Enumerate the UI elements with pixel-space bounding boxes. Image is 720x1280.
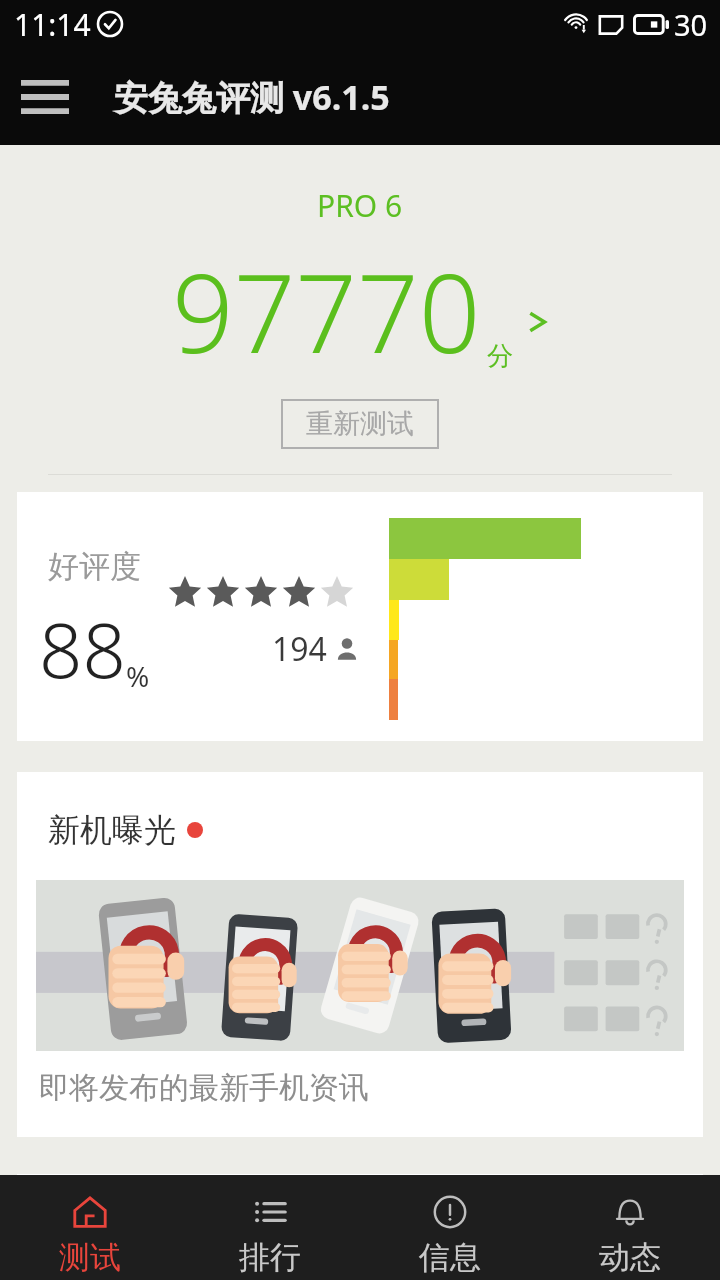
staticText: 测试 [59, 1238, 121, 1277]
staticText: 194 [272, 627, 327, 671]
staticText: 排行 [239, 1238, 301, 1277]
staticText: 动态 [599, 1238, 661, 1277]
staticText: 分 [487, 340, 513, 373]
staticText: 新机曝光 [48, 810, 176, 850]
staticText: 97770 [172, 238, 481, 385]
staticText: 重新测试 [306, 407, 414, 441]
staticText: 即将发布的最新手机资讯 [39, 1069, 369, 1107]
staticText: 安兔兔评测 v6.1.5 [114, 74, 390, 120]
staticText: 好评度 [48, 547, 141, 586]
button[interactable]: 好评度 [17, 492, 703, 741]
staticText: 11:14 [14, 4, 91, 45]
staticText: 88 [39, 597, 126, 701]
button[interactable]: Menu [14, 66, 76, 128]
button[interactable]: 新机曝光 [17, 772, 703, 1137]
staticText: 信息 [419, 1238, 481, 1277]
button[interactable]: 排行 [180, 1175, 360, 1280]
button[interactable]: 信息 [360, 1175, 540, 1280]
button[interactable]: 测试 [0, 1175, 180, 1280]
button[interactable]: 动态 [540, 1175, 720, 1280]
staticText: % [126, 657, 150, 695]
button[interactable]: 重新测试 [281, 399, 439, 449]
staticText: PRO 6 [317, 185, 403, 226]
staticText: 30 [674, 5, 708, 44]
